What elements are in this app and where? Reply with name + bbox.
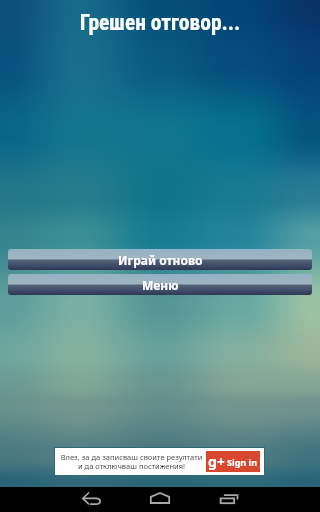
staticText: g+ (208, 452, 225, 471)
button[interactable]: g+ (206, 451, 260, 472)
button[interactable]: Back (63, 487, 105, 512)
staticText: Играй отново (118, 252, 203, 268)
button[interactable]: Home (139, 487, 181, 512)
button[interactable]: Влез, за да записваш своите резултати и … (55, 448, 264, 475)
button[interactable]: Играй отново (8, 249, 312, 270)
staticText: Грешен отговор... (0, 10, 320, 35)
staticText: Меню (142, 277, 179, 293)
button[interactable]: Recent apps (215, 487, 257, 512)
staticText: Влез, за да записваш своите резултати и … (59, 452, 204, 472)
staticText: Sign in (227, 456, 258, 468)
button[interactable]: Меню (8, 274, 312, 295)
